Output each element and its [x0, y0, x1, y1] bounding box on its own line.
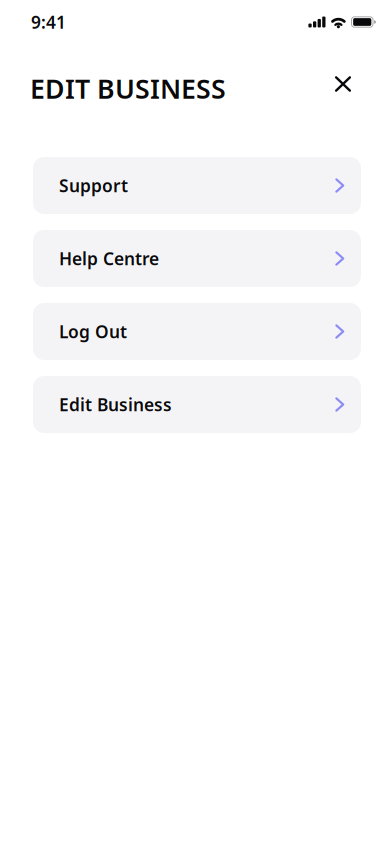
button[interactable]: Log Out	[33, 303, 361, 360]
button[interactable]: Help Centre	[33, 230, 361, 287]
staticText: Log Out	[59, 320, 127, 343]
staticText: Edit Business	[59, 393, 172, 416]
staticText: EDIT BUSINESS	[30, 71, 226, 106]
staticText: Help Centre	[59, 247, 159, 270]
staticText: Support	[59, 174, 128, 197]
staticText: 9:41	[31, 10, 66, 33]
button[interactable]: Edit Business	[33, 376, 361, 433]
button[interactable]: Support	[33, 157, 361, 214]
button[interactable]: Close	[326, 67, 360, 101]
